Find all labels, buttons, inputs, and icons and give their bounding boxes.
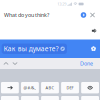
button[interactable]: JKL — [41, 96, 59, 100]
staticText: What do you think? — [4, 11, 49, 19]
button[interactable]: Listen — [90, 27, 98, 35]
button[interactable]: Previous field — [1, 58, 10, 69]
button[interactable]: GHI — [21, 96, 39, 100]
button[interactable] — [1, 96, 19, 100]
button[interactable]: MNO — [61, 96, 79, 100]
button[interactable]: Close — [88, 8, 97, 22]
staticText: Done — [80, 60, 93, 67]
button[interactable]: Done — [78, 58, 95, 69]
staticText: Как вы думаете? — [4, 44, 59, 53]
button[interactable]: Suggest — [89, 44, 98, 53]
button[interactable]: Delete — [81, 82, 99, 93]
staticText: 13:29 — [57, 1, 66, 7]
staticText: ABC — [45, 85, 54, 90]
button[interactable]: Translate — [79, 8, 88, 22]
button[interactable]: DEF — [61, 82, 79, 93]
button[interactable] — [81, 96, 99, 100]
button[interactable]: ABC — [41, 82, 59, 93]
button[interactable]: Next field — [10, 58, 19, 69]
button[interactable]: Tab — [1, 82, 19, 93]
staticText: @#/&_ — [23, 85, 36, 90]
staticText: DEF — [66, 85, 73, 90]
button[interactable]: @#/&_ — [21, 82, 39, 93]
